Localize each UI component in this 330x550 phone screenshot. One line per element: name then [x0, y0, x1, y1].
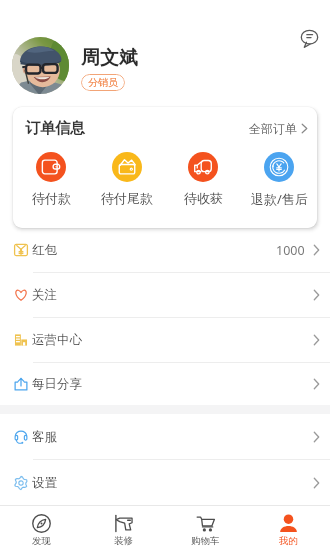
staticText: 待付款	[32, 190, 71, 206]
staticText: 周文斌	[81, 46, 138, 70]
button[interactable]: 每日分享	[0, 363, 330, 405]
staticText: 退款/售后	[251, 190, 308, 208]
staticText: 发现	[32, 535, 51, 547]
button[interactable]: 待收获	[165, 145, 241, 228]
button[interactable]: 全部订单	[249, 121, 317, 136]
button[interactable]: 装修	[82, 506, 164, 550]
button[interactable]: 待付尾款	[89, 145, 165, 228]
button[interactable]: 退款/售后	[241, 145, 317, 228]
staticText: 设置	[32, 475, 57, 491]
staticText: 运营中心	[32, 332, 82, 348]
button[interactable]: 购物车	[164, 506, 247, 550]
button[interactable]: 客服	[0, 414, 330, 459]
staticText: 1000	[276, 242, 305, 259]
staticText: 关注	[32, 287, 57, 303]
staticText: 分销员	[88, 76, 118, 89]
button[interactable]: Avatar	[12, 37, 69, 94]
staticText: 购物车	[191, 535, 220, 547]
staticText: 我的	[279, 535, 298, 547]
staticText: 客服	[32, 429, 57, 445]
staticText: 每日分享	[32, 376, 82, 392]
button[interactable]: 发现	[0, 506, 82, 550]
button[interactable]: 红包	[0, 228, 330, 272]
button[interactable]: 我的	[247, 506, 330, 550]
staticText: 装修	[114, 535, 133, 547]
staticText: 全部订单	[249, 121, 297, 136]
staticText: 待收获	[184, 190, 223, 206]
staticText: 订单信息	[25, 119, 85, 138]
button[interactable]: 设置	[0, 460, 330, 505]
button[interactable]: 关注	[0, 273, 330, 317]
button[interactable]: 待付款	[13, 145, 89, 228]
staticText: 红包	[32, 242, 57, 258]
button[interactable]: Messages	[298, 27, 320, 49]
button[interactable]: 运营中心	[0, 318, 330, 362]
button[interactable]: 分销员	[81, 74, 125, 91]
staticText: 待付尾款	[101, 190, 153, 206]
